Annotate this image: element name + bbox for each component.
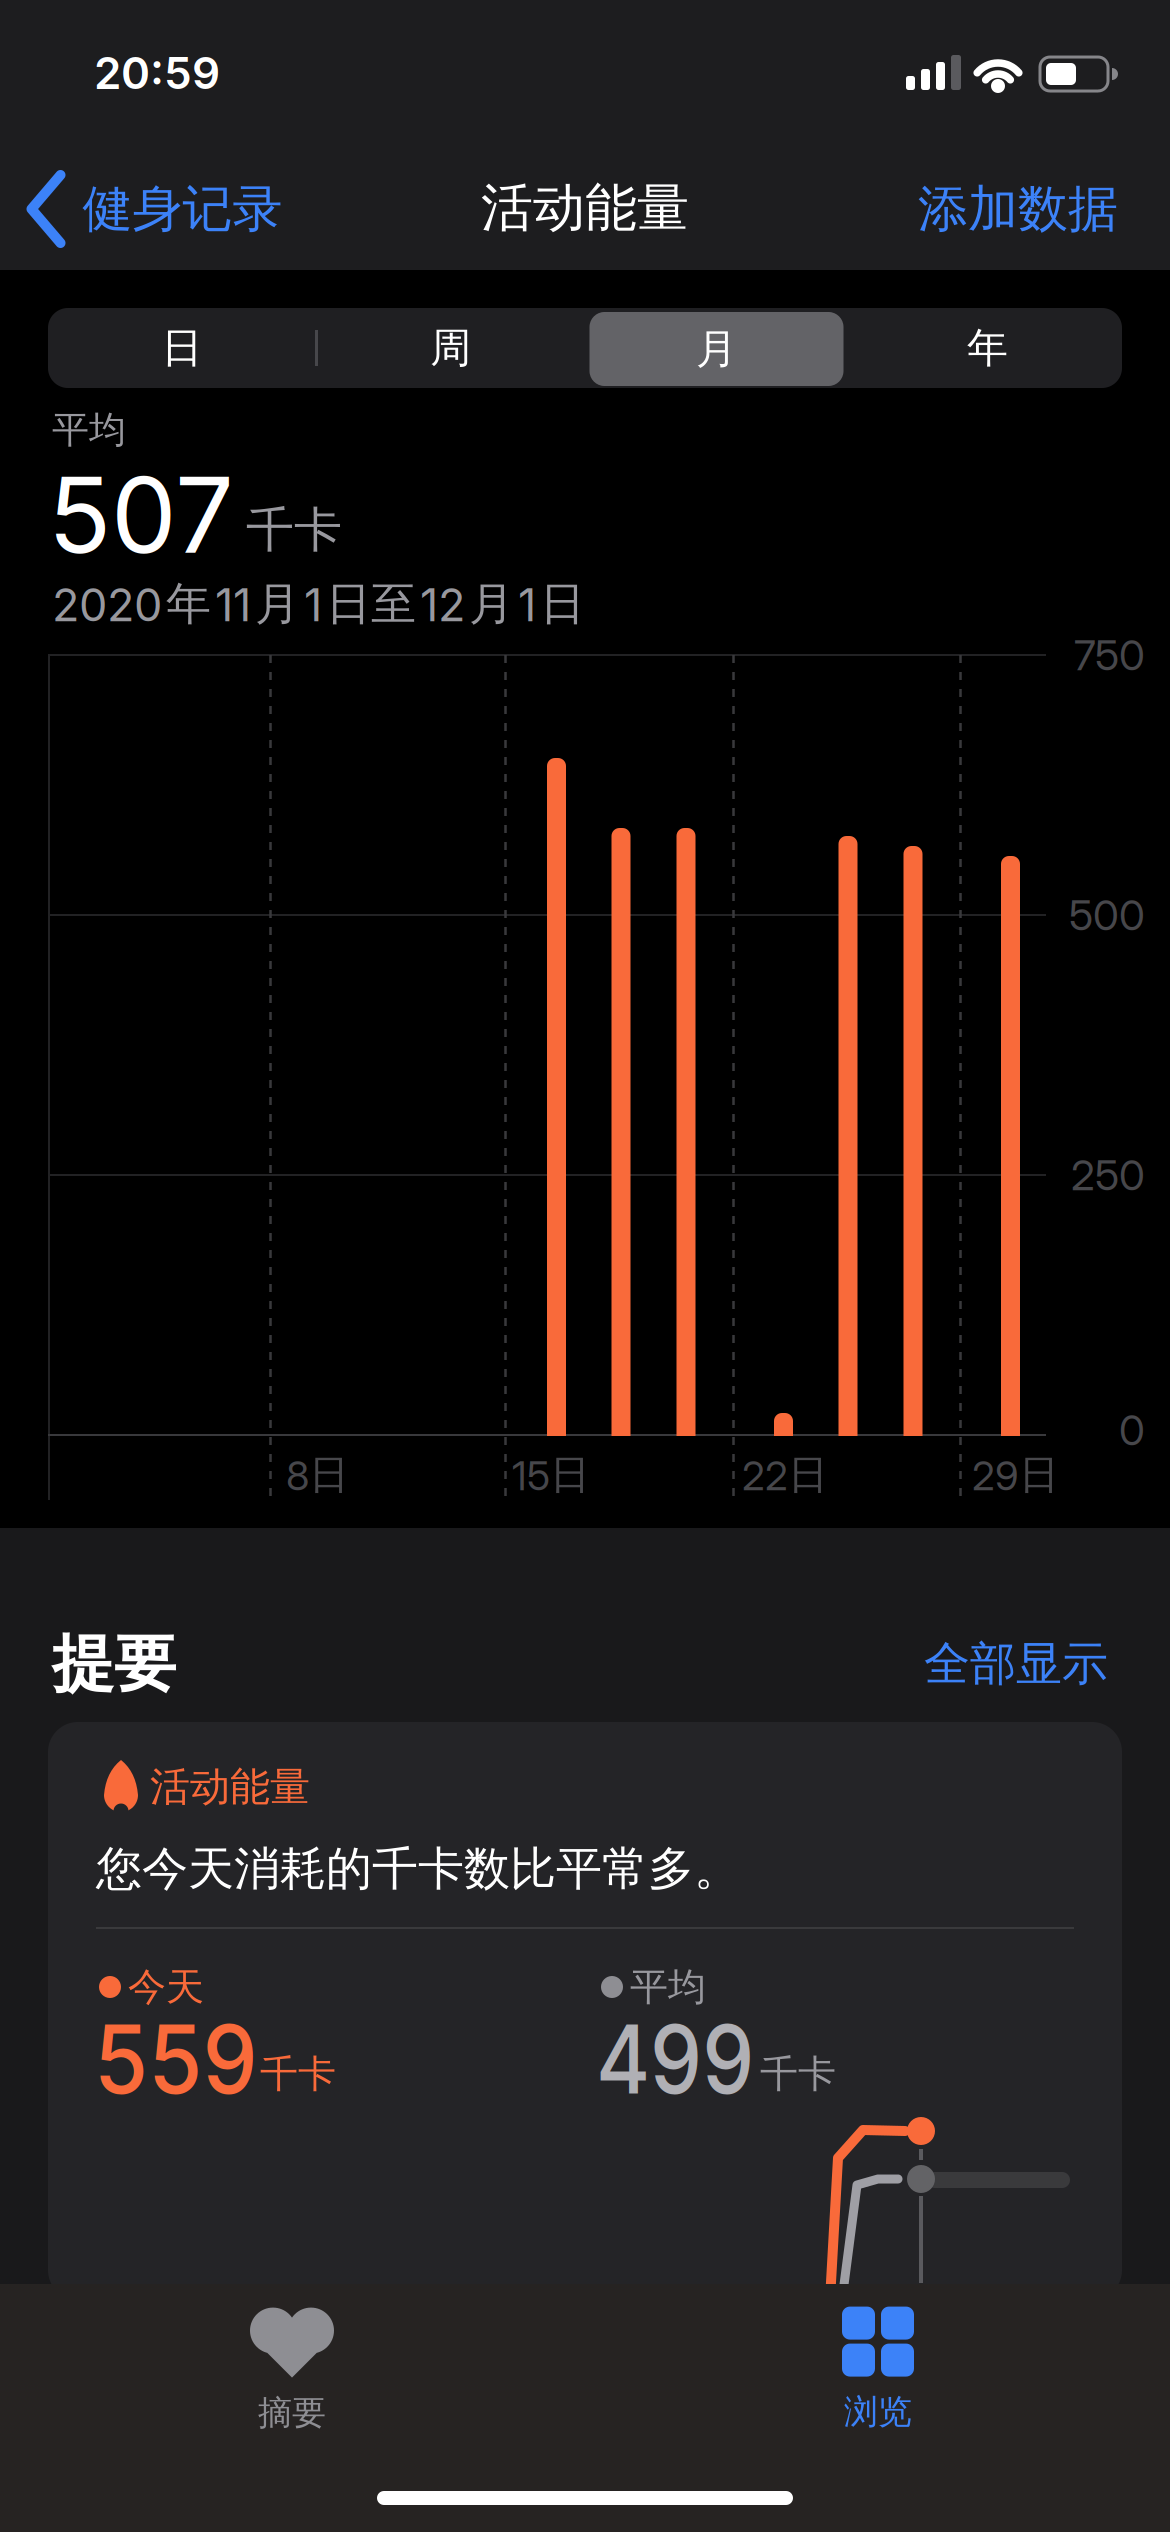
button[interactable]: 浏览: [842, 2307, 914, 2433]
staticText: 周: [430, 322, 471, 374]
staticText: 20:59: [94, 46, 220, 100]
button[interactable]: 日: [51, 312, 313, 384]
button[interactable]: 添加数据: [918, 177, 1118, 240]
button[interactable]: 摘要: [250, 2306, 334, 2434]
staticText: 平均: [630, 1963, 706, 2011]
staticText: 平均: [52, 407, 126, 453]
staticText: 15日: [512, 1450, 590, 1500]
staticText: 22日: [742, 1450, 828, 1500]
button[interactable]: 全部显示: [924, 1635, 1108, 1693]
staticText: 0: [1119, 1405, 1145, 1455]
staticText: 499: [596, 2001, 778, 2116]
staticText: 活动能量: [150, 1762, 310, 1812]
staticText: 750: [1074, 630, 1145, 680]
staticText: 559: [94, 2001, 272, 2116]
button[interactable]: 活动能量: [48, 1722, 1122, 2300]
staticText: 年: [967, 322, 1008, 374]
staticText: 29日: [972, 1450, 1059, 1500]
staticText: 活动能量: [481, 175, 689, 241]
staticText: 8日: [286, 1450, 349, 1500]
staticText: 您今天消耗的千卡数比平常多。: [96, 1840, 740, 1898]
staticText: 日: [161, 322, 202, 374]
staticText: 千卡: [260, 2050, 336, 2098]
staticText: 千卡: [246, 500, 342, 560]
staticText: 507: [48, 452, 234, 578]
staticText: 250: [1071, 1150, 1145, 1200]
button[interactable]: 月: [589, 312, 843, 386]
staticText: 提要: [52, 1625, 176, 1703]
staticText: 500: [1069, 890, 1145, 940]
staticText: 千卡: [760, 2050, 836, 2098]
button[interactable]: 周: [320, 312, 582, 384]
staticText: 摘要: [258, 2392, 326, 2434]
staticText: 月: [696, 323, 737, 375]
staticText: 全部显示: [924, 1635, 1108, 1693]
staticText: 2020 年 11 月 1 日至 12 月 1 日: [52, 576, 585, 632]
button[interactable]: 健身记录: [27, 171, 282, 247]
staticText: 健身记录: [82, 177, 282, 240]
button[interactable]: 年: [857, 312, 1119, 384]
staticText: 添加数据: [918, 177, 1118, 240]
staticText: 浏览: [844, 2391, 912, 2433]
staticText: 今天: [128, 1963, 204, 2011]
